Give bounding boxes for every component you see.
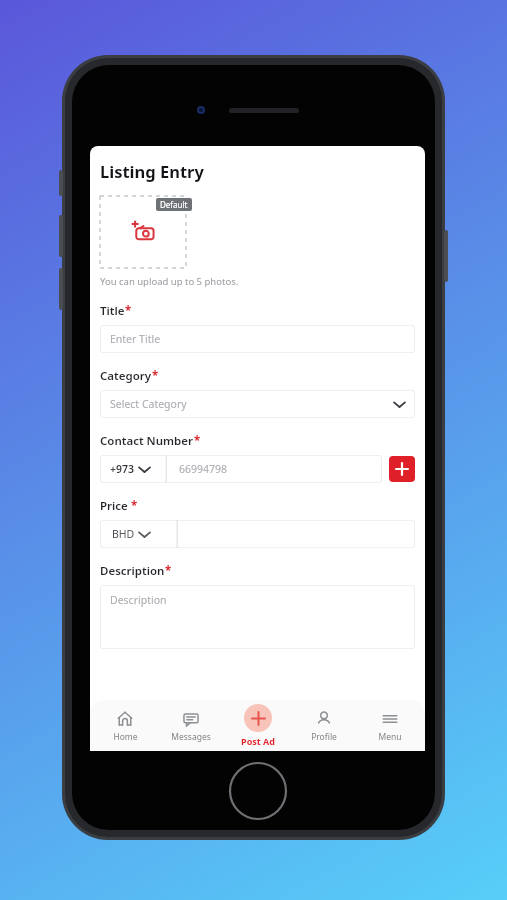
staticText: Profile xyxy=(311,731,337,743)
button[interactable]: Select Category xyxy=(100,390,415,418)
staticText: * xyxy=(152,368,159,384)
staticText: Category xyxy=(100,368,152,384)
button[interactable]: Post Ad xyxy=(227,700,289,751)
staticText: Enter Title xyxy=(110,332,161,346)
staticText: * xyxy=(194,433,201,449)
staticText: * xyxy=(125,303,132,319)
staticText: Description xyxy=(100,563,165,579)
staticText: Default xyxy=(160,199,188,210)
button[interactable]: Add contact number xyxy=(389,456,415,482)
button[interactable]: Add photo xyxy=(100,196,186,268)
staticText: 66994798 xyxy=(179,462,228,476)
staticText: * xyxy=(165,563,172,579)
staticText: You can upload up to 5 photos. xyxy=(100,275,239,288)
staticText: Contact Number xyxy=(100,433,194,449)
staticText: Menu xyxy=(378,731,402,743)
button[interactable]: Home xyxy=(94,700,156,751)
staticText: Post Ad xyxy=(241,735,275,747)
button[interactable]: BHD xyxy=(100,520,176,548)
button[interactable]: Menu xyxy=(359,700,421,751)
staticText: Home xyxy=(113,731,138,743)
staticText: Listing Entry xyxy=(100,160,204,182)
staticText: Price xyxy=(100,498,131,514)
staticText: Messages xyxy=(171,731,211,743)
button[interactable]: Enter Title xyxy=(100,325,415,353)
button[interactable]: Messages xyxy=(160,700,222,751)
staticText: Description xyxy=(110,593,167,607)
button[interactable]: Profile xyxy=(293,700,355,751)
staticText: BHD xyxy=(112,527,135,541)
button[interactable]: Description xyxy=(100,585,415,649)
staticText: Title xyxy=(100,303,125,319)
staticText: * xyxy=(131,498,138,514)
staticText: +973 xyxy=(110,462,135,476)
button[interactable]: +973 xyxy=(100,455,169,483)
staticText: Select Category xyxy=(110,397,187,411)
